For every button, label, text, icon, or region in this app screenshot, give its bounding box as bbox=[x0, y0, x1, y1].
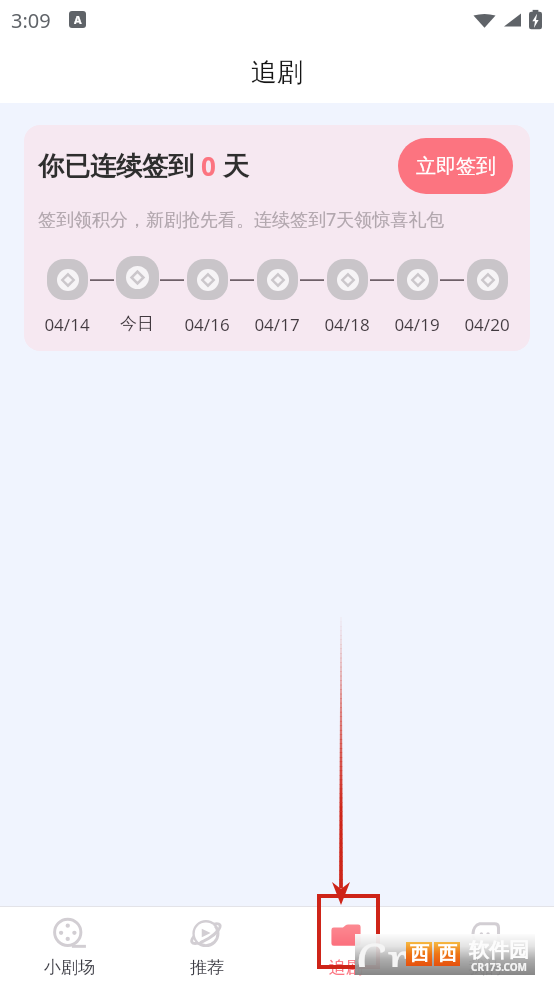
button[interactable]: 签到 04/14 bbox=[47, 259, 88, 300]
button[interactable]: 立即签到 bbox=[398, 138, 513, 194]
staticText: 西 bbox=[438, 942, 457, 966]
button[interactable]: 追剧 bbox=[276, 907, 415, 978]
staticText: 04/18 bbox=[324, 313, 370, 336]
staticText: 今日 bbox=[120, 313, 154, 334]
staticText: 04/19 bbox=[394, 313, 440, 336]
staticText: 0 bbox=[201, 148, 216, 183]
staticText: 西 bbox=[410, 942, 429, 966]
staticText: CR173.COM bbox=[471, 960, 528, 974]
staticText: 我的 bbox=[468, 957, 502, 978]
staticText: 签到领积分，新剧抢先看。连续签到7天领惊喜礼包 bbox=[38, 207, 445, 232]
staticText: 04/20 bbox=[464, 313, 510, 336]
staticText: 小剧场 bbox=[44, 957, 95, 978]
button[interactable]: 签到 04/18 bbox=[327, 259, 368, 300]
staticText: 立即签到 bbox=[416, 154, 496, 179]
staticText: 04/16 bbox=[184, 313, 230, 336]
staticText: Cr bbox=[356, 926, 411, 967]
staticText: 3:09 bbox=[11, 7, 51, 34]
staticText: 04/17 bbox=[254, 313, 300, 336]
button[interactable]: 小剧场 bbox=[0, 907, 138, 978]
button[interactable]: 签到 04/16 bbox=[187, 259, 228, 300]
staticText: 你已连续签到 bbox=[38, 147, 201, 183]
button[interactable]: 推荐 bbox=[138, 907, 276, 978]
staticText: 天 bbox=[216, 147, 249, 183]
button[interactable]: 签到 今日 bbox=[116, 256, 159, 299]
button[interactable]: 签到 04/19 bbox=[397, 259, 438, 300]
staticText: 软件园 bbox=[469, 938, 529, 963]
button[interactable]: 签到 04/20 bbox=[467, 259, 508, 300]
staticText: A bbox=[74, 12, 82, 27]
staticText: 追剧 bbox=[251, 56, 303, 89]
staticText: 追剧 bbox=[329, 957, 363, 978]
staticText: 推荐 bbox=[190, 957, 224, 978]
button[interactable]: 签到 04/17 bbox=[257, 259, 298, 300]
staticText: 04/14 bbox=[44, 313, 90, 336]
button[interactable]: 我的 bbox=[415, 907, 554, 978]
